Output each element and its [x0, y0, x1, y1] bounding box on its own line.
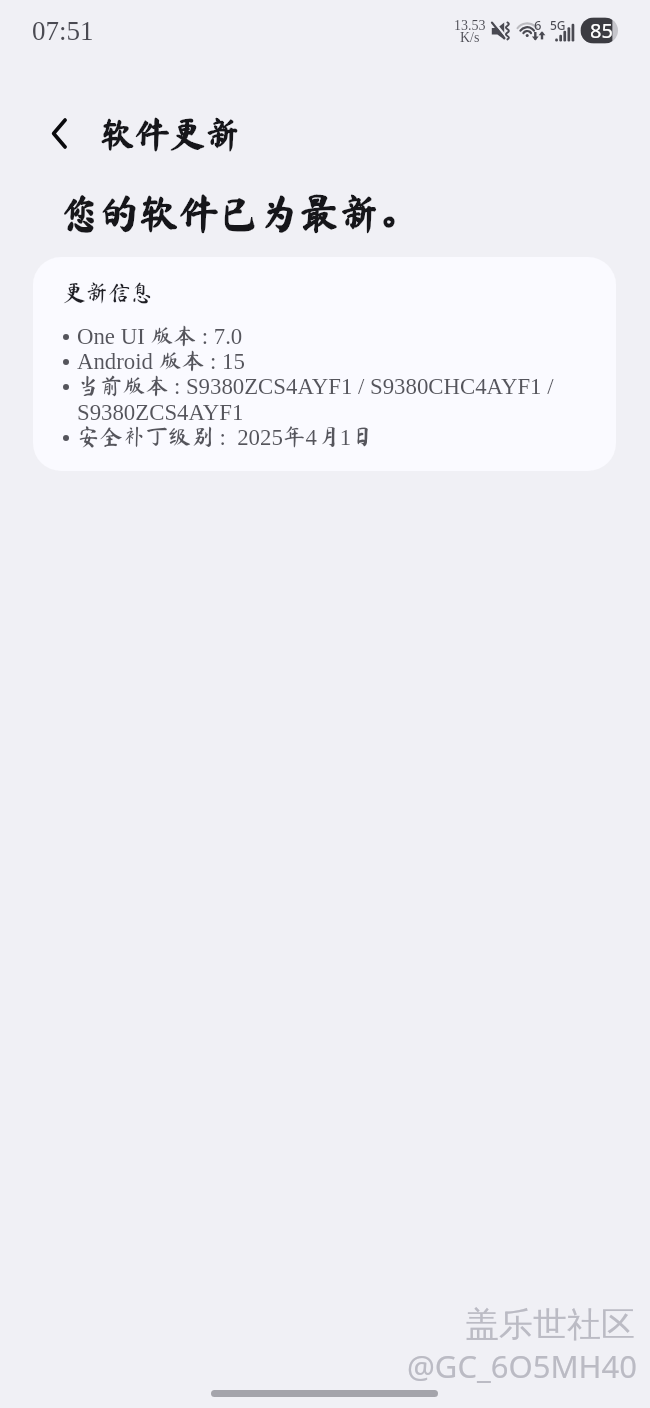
staticText: 当前版本 : S9380ZCS4AYF1 / S9380CHC4AYF1 / S… — [77, 374, 602, 425]
button[interactable]: 更新信息 — [33, 257, 616, 471]
staticText: 6 — [534, 16, 542, 34]
staticText: 更新信息 — [63, 281, 154, 303]
staticText: 安全补丁级别 : 2025年4月1日 — [77, 425, 374, 450]
staticText: 5G — [550, 17, 566, 33]
staticText: 85 — [590, 17, 613, 44]
staticText: 13.53 — [454, 18, 486, 34]
staticText: Android 版本 : 15 — [77, 349, 245, 374]
staticText: 软件更新 — [100, 116, 241, 151]
staticText: K/s — [460, 30, 480, 46]
staticText: One UI 版本 : 7.0 — [77, 324, 243, 349]
button[interactable]: Back — [40, 113, 80, 153]
staticText: 盖乐世社区 — [465, 1303, 635, 1346]
staticText: 07:51 — [32, 16, 94, 46]
staticText: @GC_6O5MH40 — [407, 1345, 638, 1387]
staticText: 您的软件已为最新。 — [59, 193, 419, 233]
